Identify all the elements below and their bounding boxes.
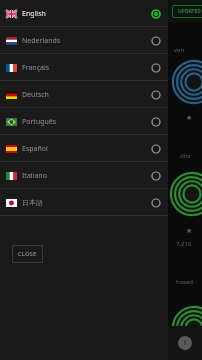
staticText: UPDATED bbox=[178, 8, 201, 15]
button[interactable]: English bbox=[0, 0, 168, 27]
button[interactable]: Português bbox=[0, 108, 168, 135]
button[interactable]: Español bbox=[0, 135, 168, 162]
button[interactable]: CLOSE bbox=[12, 245, 43, 263]
staticText: ★ bbox=[186, 227, 193, 235]
staticText: Deutsch bbox=[22, 90, 49, 100]
staticText: ven bbox=[174, 46, 185, 54]
button[interactable]: Français bbox=[0, 54, 168, 81]
staticText: English bbox=[22, 9, 46, 19]
staticText: dits bbox=[180, 152, 191, 160]
staticText: 7,210 bbox=[176, 240, 192, 248]
staticText: Português bbox=[22, 117, 57, 127]
button[interactable]: UPDATED bbox=[172, 5, 202, 18]
staticText: Nederlands bbox=[22, 36, 61, 46]
button[interactable]: Nederlands bbox=[0, 27, 168, 54]
staticText: Italiano bbox=[22, 171, 47, 181]
button[interactable]: Italiano bbox=[0, 162, 168, 189]
staticText: 日本語 bbox=[22, 198, 43, 207]
staticText: CLOSE bbox=[18, 250, 37, 258]
staticText: Français bbox=[22, 63, 50, 73]
button[interactable]: Deutsch bbox=[0, 81, 168, 108]
button[interactable]: 日本語 bbox=[0, 189, 168, 216]
staticText: Español bbox=[22, 144, 48, 154]
button[interactable]: Info bbox=[178, 336, 192, 350]
staticText: hased bbox=[176, 278, 194, 286]
staticText: i bbox=[184, 338, 187, 348]
staticText: ★ bbox=[186, 114, 193, 122]
